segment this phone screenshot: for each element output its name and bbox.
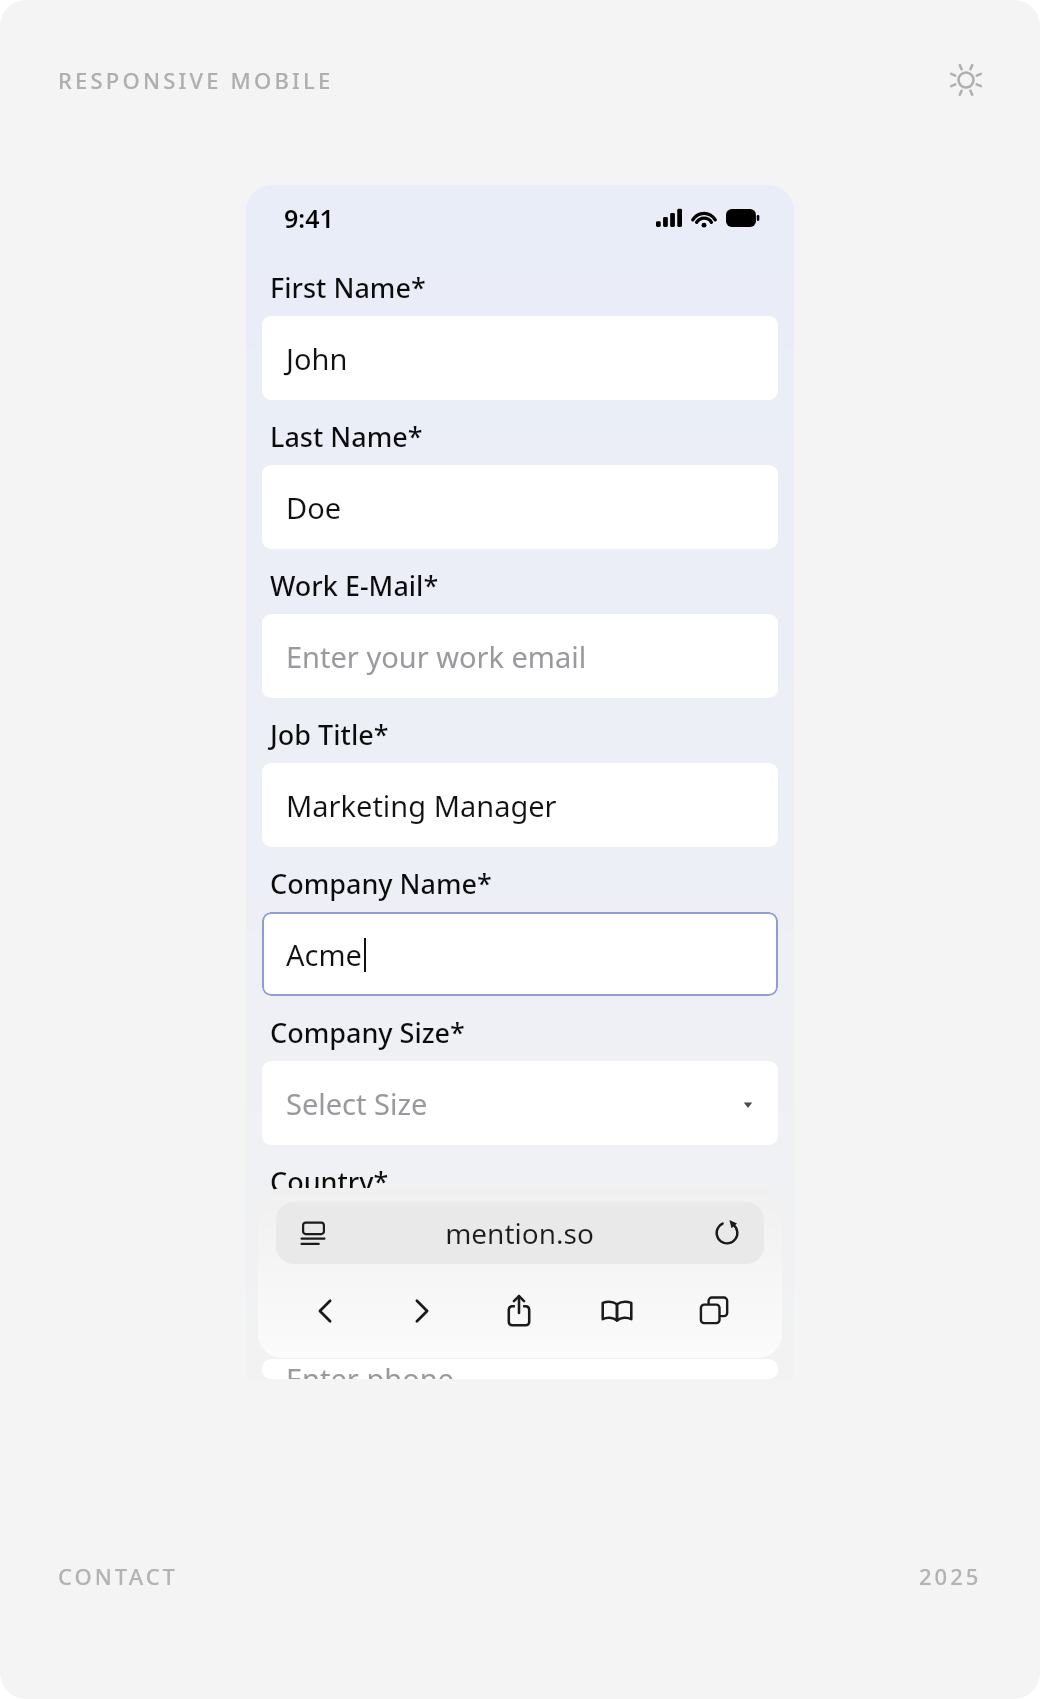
button[interactable]: Forward [373, 1278, 470, 1344]
button[interactable]: Share [470, 1278, 568, 1344]
staticText: 9:41 [284, 201, 334, 235]
button[interactable]: Tabs [666, 1278, 764, 1344]
staticText: Marketing Manager [286, 786, 557, 825]
button[interactable]: Enter phone [262, 1359, 778, 1379]
button[interactable]: Select Country [262, 1210, 778, 1294]
button[interactable]: Doe [262, 465, 778, 549]
button[interactable]: Back [276, 1278, 373, 1344]
staticText: Acme [286, 935, 362, 974]
other: Page settings [298, 1218, 328, 1248]
button[interactable]: Bookmarks [568, 1278, 666, 1344]
staticText: mention.so [445, 1214, 594, 1252]
staticText: Phone Number [270, 1312, 467, 1349]
other: Reload [712, 1218, 742, 1248]
button[interactable]: Page settings [276, 1202, 764, 1264]
button[interactable]: Marketing Manager [262, 763, 778, 847]
button[interactable]: Select Size [262, 1061, 778, 1145]
staticText: First Name* [270, 269, 426, 306]
staticText: Company Name* [270, 865, 492, 902]
staticText: Country* [270, 1163, 389, 1200]
staticText: Job Title* [270, 716, 389, 753]
button[interactable]: Toggle light mode [944, 58, 988, 102]
staticText: Enter phone [286, 1359, 454, 1379]
staticText: 2025 [919, 1561, 982, 1591]
staticText: Doe [286, 488, 342, 527]
button[interactable]: John [262, 316, 778, 400]
staticText: Select Size [286, 1084, 428, 1123]
button[interactable]: CONTACT [58, 1561, 178, 1591]
staticText: John [286, 339, 348, 378]
staticText: Company Size* [270, 1014, 465, 1051]
button[interactable]: Acme [262, 912, 778, 996]
staticText: Select Country [286, 1233, 483, 1272]
staticText: RESPONSIVE MOBILE [58, 65, 334, 95]
staticText: Enter your work email [286, 637, 587, 676]
button[interactable]: Enter your work email [262, 614, 778, 698]
staticText: Work E-Mail* [270, 567, 439, 604]
staticText: Last Name* [270, 418, 423, 455]
